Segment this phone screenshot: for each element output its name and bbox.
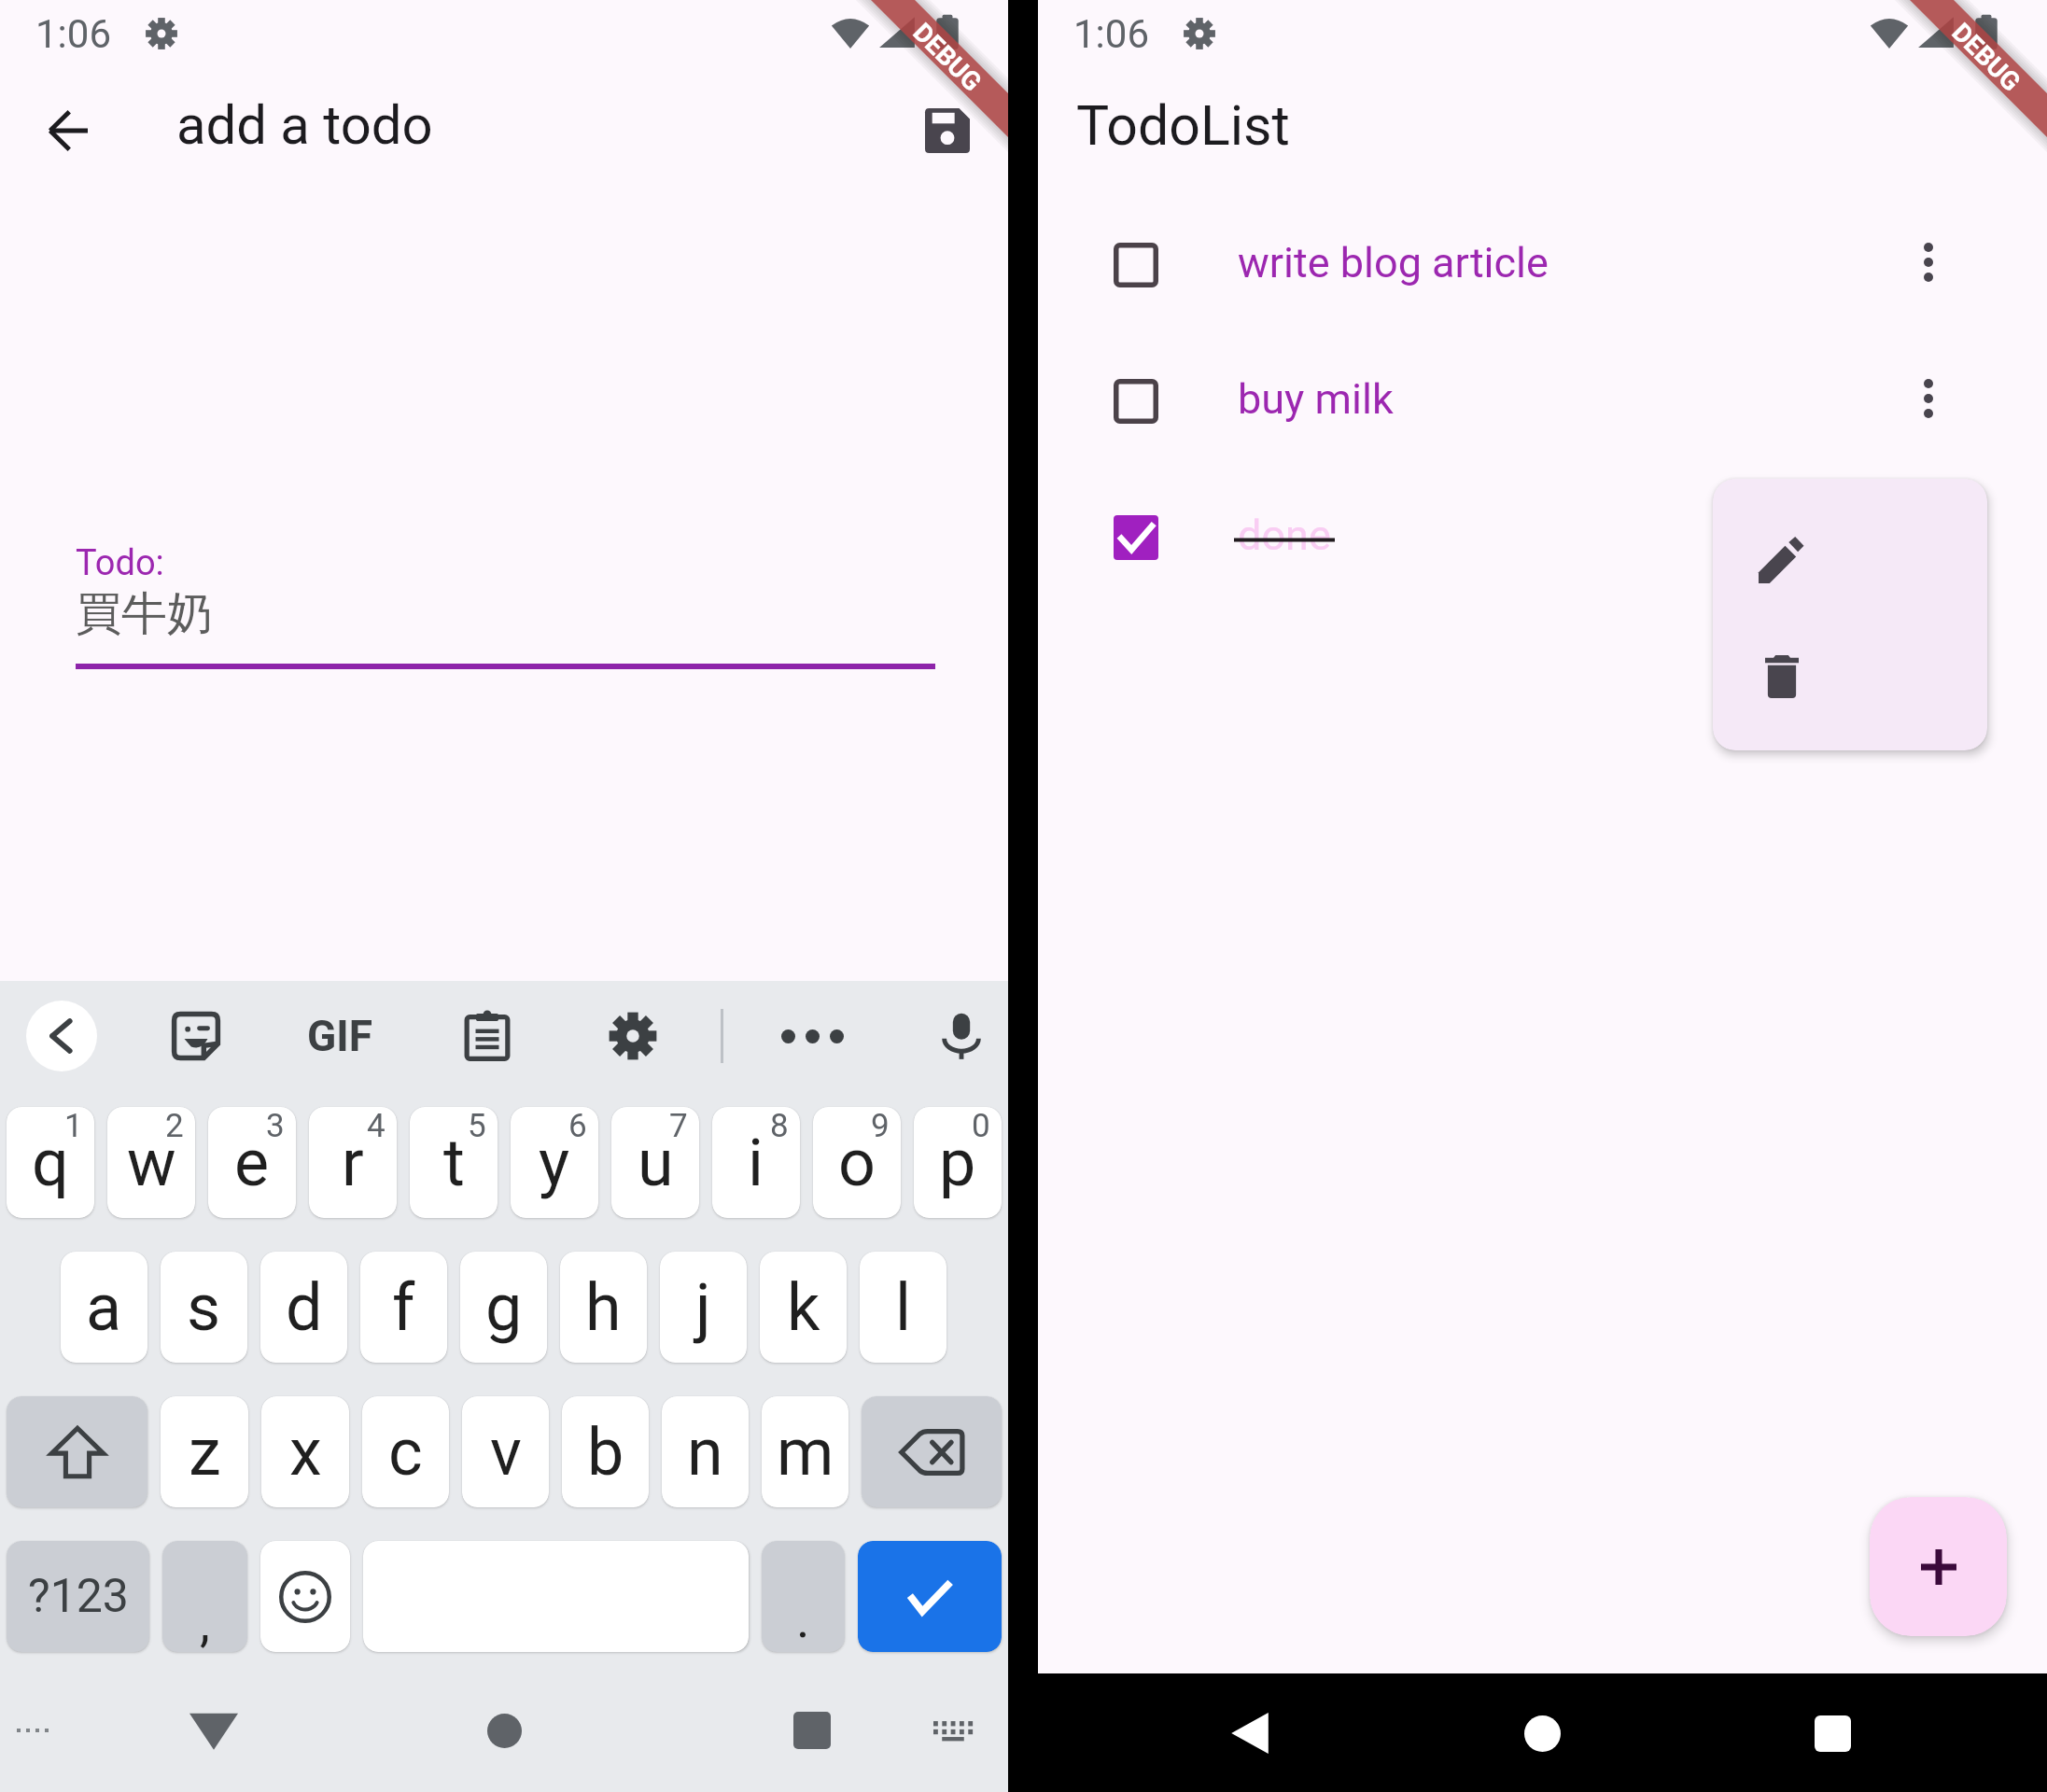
button[interactable]: j	[660, 1252, 747, 1363]
button[interactable]: ?123	[7, 1541, 149, 1652]
button[interactable]: Hide keyboard	[172, 1688, 256, 1772]
staticText: b	[587, 1414, 624, 1491]
button[interactable]: l	[860, 1252, 946, 1363]
button[interactable]: Clipboard	[445, 994, 529, 1078]
button[interactable]: Delete	[1713, 619, 1987, 750]
staticText: 1	[64, 1107, 83, 1145]
staticText: d	[286, 1269, 323, 1346]
staticText: p	[939, 1125, 976, 1201]
staticText: 9	[871, 1107, 890, 1145]
button[interactable]: Save	[886, 67, 1008, 193]
button[interactable]: y	[511, 1107, 598, 1218]
button[interactable]: m	[762, 1396, 848, 1507]
staticText: k	[787, 1269, 820, 1346]
button[interactable]	[260, 1541, 350, 1652]
staticText: x	[289, 1414, 322, 1491]
button[interactable]: g	[460, 1252, 547, 1363]
staticText: 0	[972, 1107, 990, 1145]
staticText: j	[695, 1269, 711, 1346]
staticText: 6	[568, 1107, 587, 1145]
staticText: write blog article	[1238, 238, 1549, 287]
button[interactable]: More options	[1877, 211, 1980, 314]
staticText: l	[895, 1269, 912, 1346]
button[interactable]	[858, 1541, 1002, 1652]
button[interactable]: h	[560, 1252, 647, 1363]
staticText: ,	[200, 1593, 210, 1652]
staticText: done	[1238, 511, 1331, 560]
button[interactable]: Close toolbar	[20, 994, 104, 1078]
button[interactable]: n	[662, 1396, 749, 1507]
button[interactable]: Home	[462, 1688, 546, 1772]
button[interactable]: s	[161, 1252, 247, 1363]
button[interactable]: i	[712, 1107, 800, 1218]
staticText: DEBUG	[1946, 17, 2027, 98]
staticText: 4	[367, 1107, 386, 1145]
button[interactable]: a	[61, 1252, 147, 1363]
button[interactable]: x	[261, 1396, 349, 1507]
button[interactable]: o	[813, 1107, 901, 1218]
button[interactable]: p	[914, 1107, 1002, 1218]
staticText: 7	[669, 1107, 688, 1145]
button[interactable]: done	[1038, 467, 2047, 603]
staticText: 3	[266, 1107, 285, 1145]
button[interactable]: .	[762, 1541, 845, 1652]
button[interactable]: v	[462, 1396, 549, 1507]
staticText: w	[127, 1125, 176, 1201]
staticText: u	[638, 1125, 674, 1201]
button[interactable]: u	[611, 1107, 699, 1218]
button[interactable]: Settings	[591, 994, 675, 1078]
staticText: Todo:	[76, 542, 164, 584]
button[interactable]: Stickers	[154, 994, 238, 1078]
button[interactable]: Home	[1491, 1682, 1593, 1785]
staticText: f	[392, 1269, 415, 1346]
button[interactable]: Edit	[1713, 479, 1987, 619]
staticText: 1:06	[1073, 11, 1149, 57]
button[interactable]: ,	[162, 1541, 247, 1652]
button[interactable]: Add todo	[1870, 1497, 2007, 1636]
staticText: TodoList	[1076, 93, 1290, 158]
button[interactable]: More	[770, 994, 854, 1078]
staticText: y	[539, 1125, 570, 1201]
button[interactable]: Back	[1199, 1682, 1301, 1785]
staticText: 5	[468, 1107, 486, 1145]
staticText: r	[342, 1125, 364, 1201]
button[interactable]: f	[360, 1252, 447, 1363]
staticText: ?123	[28, 1569, 129, 1624]
button[interactable]	[7, 1396, 147, 1507]
button[interactable]: d	[260, 1252, 347, 1363]
staticText: t	[443, 1125, 465, 1201]
staticText: 8	[770, 1107, 789, 1145]
staticText: s	[187, 1269, 221, 1346]
button[interactable]: Back	[0, 67, 136, 193]
button[interactable]: GIF	[298, 994, 382, 1078]
button[interactable]: w	[107, 1107, 195, 1218]
staticText: v	[490, 1414, 522, 1491]
staticText: .	[796, 1589, 810, 1649]
button[interactable]: q	[7, 1107, 94, 1218]
button[interactable]: z	[161, 1396, 248, 1507]
button[interactable]: Recents	[770, 1688, 854, 1772]
button[interactable]: Recents	[1781, 1682, 1884, 1785]
button[interactable]	[862, 1396, 1002, 1507]
button[interactable]: buy milk	[1038, 330, 2047, 467]
staticText: m	[777, 1414, 834, 1491]
staticText: q	[32, 1125, 69, 1201]
button[interactable]: e	[208, 1107, 296, 1218]
button[interactable]: write blog article	[1038, 194, 2047, 330]
staticText: h	[585, 1269, 622, 1346]
staticText: c	[388, 1414, 423, 1491]
staticText: add a todo	[176, 93, 433, 157]
staticText: e	[234, 1125, 270, 1201]
button[interactable]: k	[760, 1252, 847, 1363]
staticText: DEBUG	[907, 17, 988, 98]
button[interactable]: b	[562, 1396, 649, 1507]
button[interactable]: t	[410, 1107, 498, 1218]
button[interactable]: c	[362, 1396, 449, 1507]
staticText: i	[748, 1125, 764, 1201]
button[interactable]: Voice input	[919, 994, 1003, 1078]
staticText: n	[687, 1414, 723, 1491]
button[interactable]: More options	[1877, 347, 1980, 450]
button[interactable]: r	[309, 1107, 397, 1218]
button[interactable]: Switch keyboard	[918, 1696, 988, 1765]
